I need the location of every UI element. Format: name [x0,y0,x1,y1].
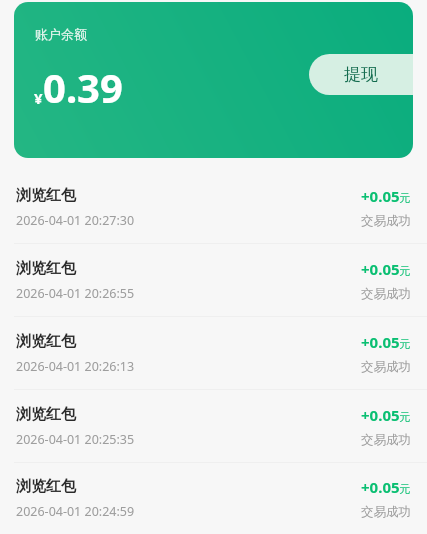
staticText: 2026-04-01 20:24:59 [16,503,135,520]
staticText: 交易成功 [361,286,411,302]
staticText: 2026-04-01 20:25:35 [16,431,135,448]
staticText: 交易成功 [361,213,411,229]
staticText: 交易成功 [361,504,411,520]
staticText: +0.05元 [361,477,411,497]
staticText: +0.05元 [361,405,411,425]
staticText: +0.05元 [361,259,411,279]
button[interactable]: 浏览红包 [0,390,427,463]
staticText: 浏览红包 [16,186,76,205]
staticText: 浏览红包 [16,259,76,278]
staticText: 浏览红包 [16,477,76,496]
staticText: 提现 [344,64,378,85]
staticText: 浏览红包 [16,332,76,351]
staticText: 浏览红包 [16,405,76,424]
staticText: ¥ [34,88,43,108]
staticText: +0.05元 [361,332,411,352]
button[interactable]: 浏览红包 [0,463,427,534]
staticText: 交易成功 [361,359,411,375]
button[interactable]: 浏览红包 [0,171,427,244]
staticText: 0.39 [43,60,123,114]
staticText: 2026-04-01 20:27:30 [16,212,135,229]
staticText: 2026-04-01 20:26:13 [16,358,135,375]
staticText: 2026-04-01 20:26:55 [16,285,135,302]
staticText: +0.05元 [361,186,411,206]
button[interactable]: 账户余额 [14,2,413,158]
button[interactable]: 提现 [309,54,413,95]
button[interactable]: 浏览红包 [0,317,427,390]
staticText: 交易成功 [361,432,411,448]
button[interactable]: 浏览红包 [0,244,427,317]
staticText: 账户余额 [35,26,87,42]
